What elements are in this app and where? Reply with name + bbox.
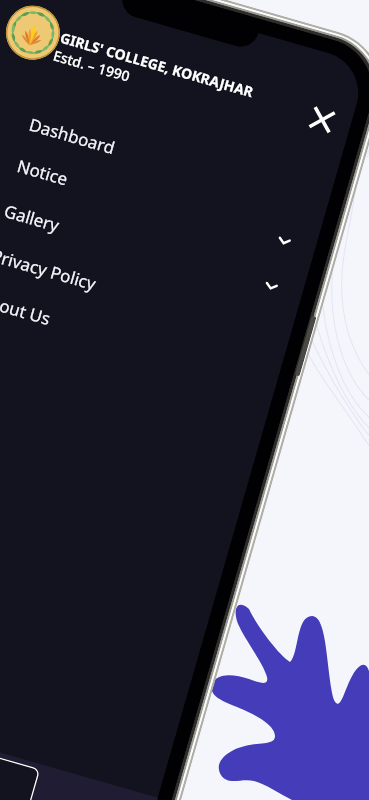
button[interactable]: Footer card — [0, 755, 40, 800]
button[interactable]: Gallery — [0, 186, 300, 313]
staticText: Privacy Policy — [0, 243, 99, 295]
staticText: Notice — [15, 154, 71, 190]
button[interactable]: About Us — [0, 274, 275, 401]
button[interactable]: Notice — [0, 141, 313, 268]
button[interactable]: Dashboard — [11, 100, 325, 226]
staticText: Estd. – 1990 — [51, 46, 132, 86]
staticText: GIRLS' COLLEGE, KOKRAJHAR — [58, 28, 256, 101]
staticText: About Us — [0, 288, 54, 330]
staticText: Dashboard — [26, 113, 118, 159]
button[interactable]: Privacy Policy — [0, 230, 287, 357]
button[interactable]: Close menu — [301, 99, 343, 141]
staticText: Gallery — [2, 199, 62, 237]
